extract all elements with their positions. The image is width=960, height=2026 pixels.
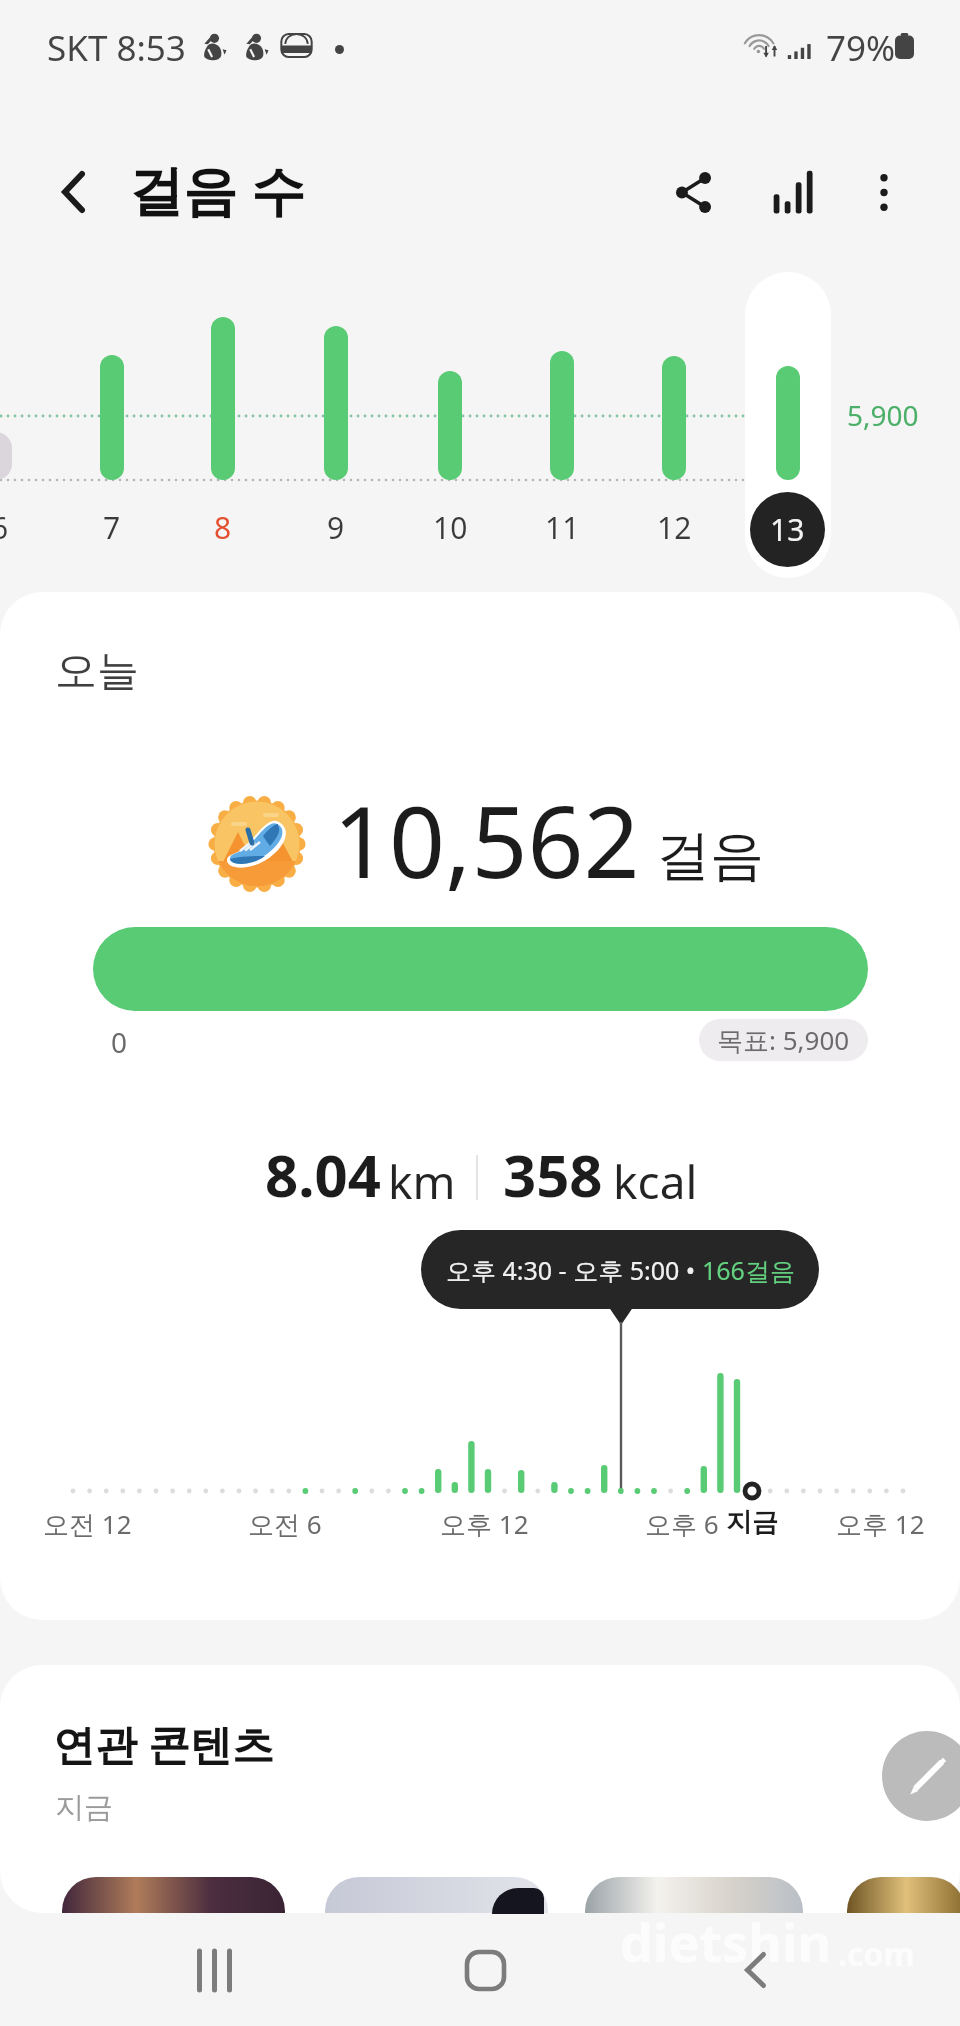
staticText: 오후 6 (645, 1506, 719, 1542)
staticText: 오전 6 (248, 1506, 322, 1542)
staticText: 11 (545, 507, 580, 548)
staticText: 지금 (55, 1789, 113, 1826)
staticText: 5,900 (847, 396, 919, 434)
staticText: 358 (503, 1135, 603, 1214)
staticText: 걸음 (656, 822, 764, 890)
button[interactable] (325, 1877, 548, 1913)
staticText: 6 (0, 507, 9, 548)
button[interactable]: Back (695, 1925, 815, 2015)
staticText: 지금 (726, 1506, 778, 1539)
button[interactable]: Chart (751, 150, 835, 234)
staticText: 목표: 5,900 (717, 1022, 850, 1058)
button[interactable]: Edit (882, 1731, 960, 1821)
button[interactable]: 오후 4:30 - 오후 5:00 • (421, 1230, 819, 1309)
button[interactable]: Recents (154, 1925, 274, 2015)
staticText: 오전 12 (43, 1506, 132, 1542)
button[interactable]: Day 13, selected (745, 272, 831, 578)
staticText: 13 (770, 509, 805, 550)
button[interactable]: 10 (407, 470, 493, 576)
staticText: dietshin (620, 1906, 832, 1977)
staticText: 10 (433, 507, 468, 548)
staticText: SKT 8:53 (47, 24, 186, 72)
staticText: 오후 12 (440, 1506, 529, 1542)
button[interactable]: 8 (180, 470, 266, 576)
button[interactable] (847, 1877, 960, 1913)
staticText: 오후 12 (836, 1506, 925, 1542)
button[interactable]: More options (842, 150, 926, 234)
button[interactable]: 9 (293, 470, 379, 576)
staticText: 0 (111, 1023, 128, 1061)
button[interactable]: 7 (69, 470, 155, 576)
button[interactable]: Home (425, 1925, 545, 2015)
staticText: kcal (613, 1150, 698, 1213)
staticText: km (388, 1150, 456, 1213)
button[interactable]: 12 (631, 470, 717, 576)
button[interactable]: Share (651, 150, 735, 234)
staticText: 12 (657, 507, 692, 548)
staticText: 오후 4:30 - 오후 5:00 • (446, 1253, 702, 1287)
staticText: 9 (327, 507, 345, 548)
staticText: 166걸음 (702, 1253, 795, 1287)
staticText: 10,562 (333, 773, 640, 906)
button[interactable] (585, 1877, 803, 1913)
button[interactable]: Back (31, 150, 115, 234)
staticText: 걸음 수 (129, 152, 306, 226)
staticText: 오늘 (55, 645, 139, 698)
staticText: 79% (826, 24, 896, 72)
button[interactable]: 6 (0, 470, 43, 576)
button[interactable] (62, 1877, 285, 1913)
button[interactable] (93, 927, 868, 1011)
staticText: 8.04 (265, 1135, 381, 1214)
button[interactable]: 11 (519, 470, 605, 576)
button[interactable]: 13 (750, 492, 825, 567)
staticText: 연관 콘텐츠 (53, 1715, 274, 1772)
staticText: 7 (103, 507, 121, 548)
staticText: 8 (214, 507, 232, 548)
